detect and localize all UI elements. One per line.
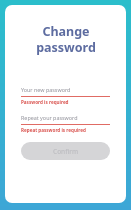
staticText: Confirm <box>53 147 79 156</box>
button[interactable]: Repeat your password <box>21 112 110 123</box>
staticText: Change password <box>36 23 96 55</box>
staticText: Your new password <box>21 86 71 93</box>
staticText: Password is required <box>21 99 69 105</box>
staticText: Repeat password is required <box>21 127 86 133</box>
staticText: Repeat your password <box>21 114 78 121</box>
button[interactable]: Confirm <box>21 142 110 160</box>
button[interactable]: Your new password <box>21 84 110 95</box>
